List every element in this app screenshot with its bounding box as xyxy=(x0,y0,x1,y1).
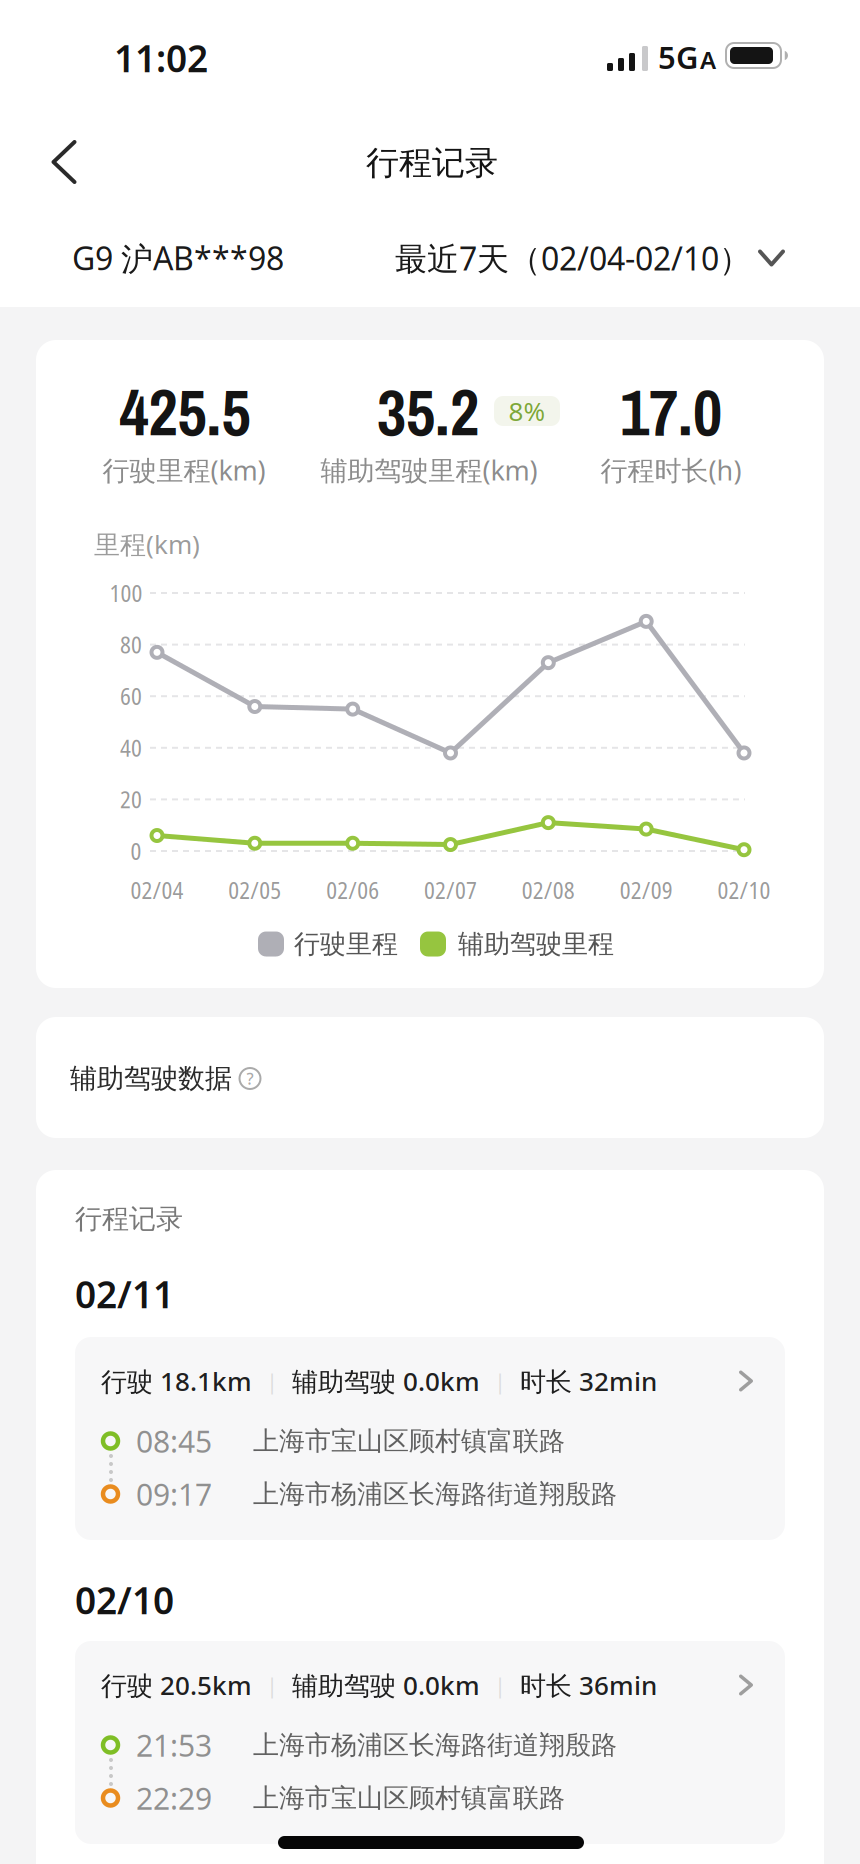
staticText: 21:53 xyxy=(136,1725,212,1765)
staticText: 辅助驾驶数据 xyxy=(70,1062,232,1095)
staticText: 行驶 18.1km xyxy=(101,1364,252,1398)
staticText: 行程记录 xyxy=(366,143,498,183)
staticText: 行驶里程 xyxy=(294,928,398,960)
staticText: 上海市杨浦区长海路街道翔殷路 xyxy=(253,1729,617,1761)
staticText: 02/07 xyxy=(424,874,477,906)
staticText: | xyxy=(266,1366,278,1396)
staticText: 02/08 xyxy=(522,874,575,906)
staticText: G9 沪AB***98 xyxy=(72,237,284,279)
staticText: 辅助驾驶里程(km) xyxy=(320,452,537,488)
staticText: 里程(km) xyxy=(94,527,200,561)
staticText: | xyxy=(494,1670,506,1700)
button[interactable]: G9 沪AB***98 xyxy=(72,237,284,279)
staticText: 辅助驾驶里程 xyxy=(458,928,614,960)
staticText: 35.2 xyxy=(377,369,479,455)
staticText: 5G xyxy=(658,36,699,78)
staticText: 100 xyxy=(109,577,142,609)
staticText: 辅助驾驶 0.0km xyxy=(292,1364,480,1398)
staticText: ? xyxy=(246,1068,253,1089)
staticText: 行驶里程(km) xyxy=(102,452,265,488)
button[interactable]: 帮助 xyxy=(238,1066,262,1090)
staticText: 02/04 xyxy=(130,874,183,906)
staticText: 行驶 20.5km xyxy=(101,1668,252,1702)
staticText: 02/05 xyxy=(228,874,281,906)
staticText: 时长 36min xyxy=(520,1668,657,1702)
staticText: 0 xyxy=(130,835,141,867)
staticText: 40 xyxy=(120,732,142,763)
button[interactable]: 最近7天（02/04-02/10） xyxy=(395,237,785,279)
staticText: 上海市杨浦区长海路街道翔殷路 xyxy=(253,1478,617,1510)
button[interactable]: 行驶 18.1km xyxy=(75,1337,785,1540)
staticText: 11:02 xyxy=(114,33,208,82)
staticText: 时长 32min xyxy=(520,1364,657,1398)
staticText: 80 xyxy=(120,629,142,660)
staticText: 行程时长(h) xyxy=(600,452,741,488)
staticText: 60 xyxy=(120,680,142,712)
staticText: 08:45 xyxy=(136,1421,212,1461)
staticText: | xyxy=(494,1366,506,1396)
staticText: 425.5 xyxy=(119,369,250,455)
staticText: 02/10 xyxy=(75,1575,174,1624)
staticText: 上海市宝山区顾村镇富联路 xyxy=(253,1782,565,1814)
button[interactable]: 返回 xyxy=(42,135,86,189)
staticText: A xyxy=(700,44,716,76)
staticText: 09:17 xyxy=(136,1474,212,1514)
staticText: 行程记录 xyxy=(75,1202,183,1236)
staticText: 02/09 xyxy=(620,874,673,906)
staticText: 22:29 xyxy=(136,1778,212,1818)
staticText: 最近7天（02/04-02/10） xyxy=(395,237,751,279)
staticText: 02/10 xyxy=(717,874,770,906)
button[interactable]: 行驶 20.5km xyxy=(75,1641,785,1844)
staticText: 上海市宝山区顾村镇富联路 xyxy=(253,1425,565,1457)
staticText: 辅助驾驶 0.0km xyxy=(292,1668,480,1702)
staticText: 02/06 xyxy=(326,874,379,906)
staticText: 17.0 xyxy=(620,369,722,455)
staticText: | xyxy=(266,1670,278,1700)
staticText: 8% xyxy=(508,394,545,428)
staticText: 02/11 xyxy=(75,1269,174,1318)
staticText: 20 xyxy=(120,784,142,815)
